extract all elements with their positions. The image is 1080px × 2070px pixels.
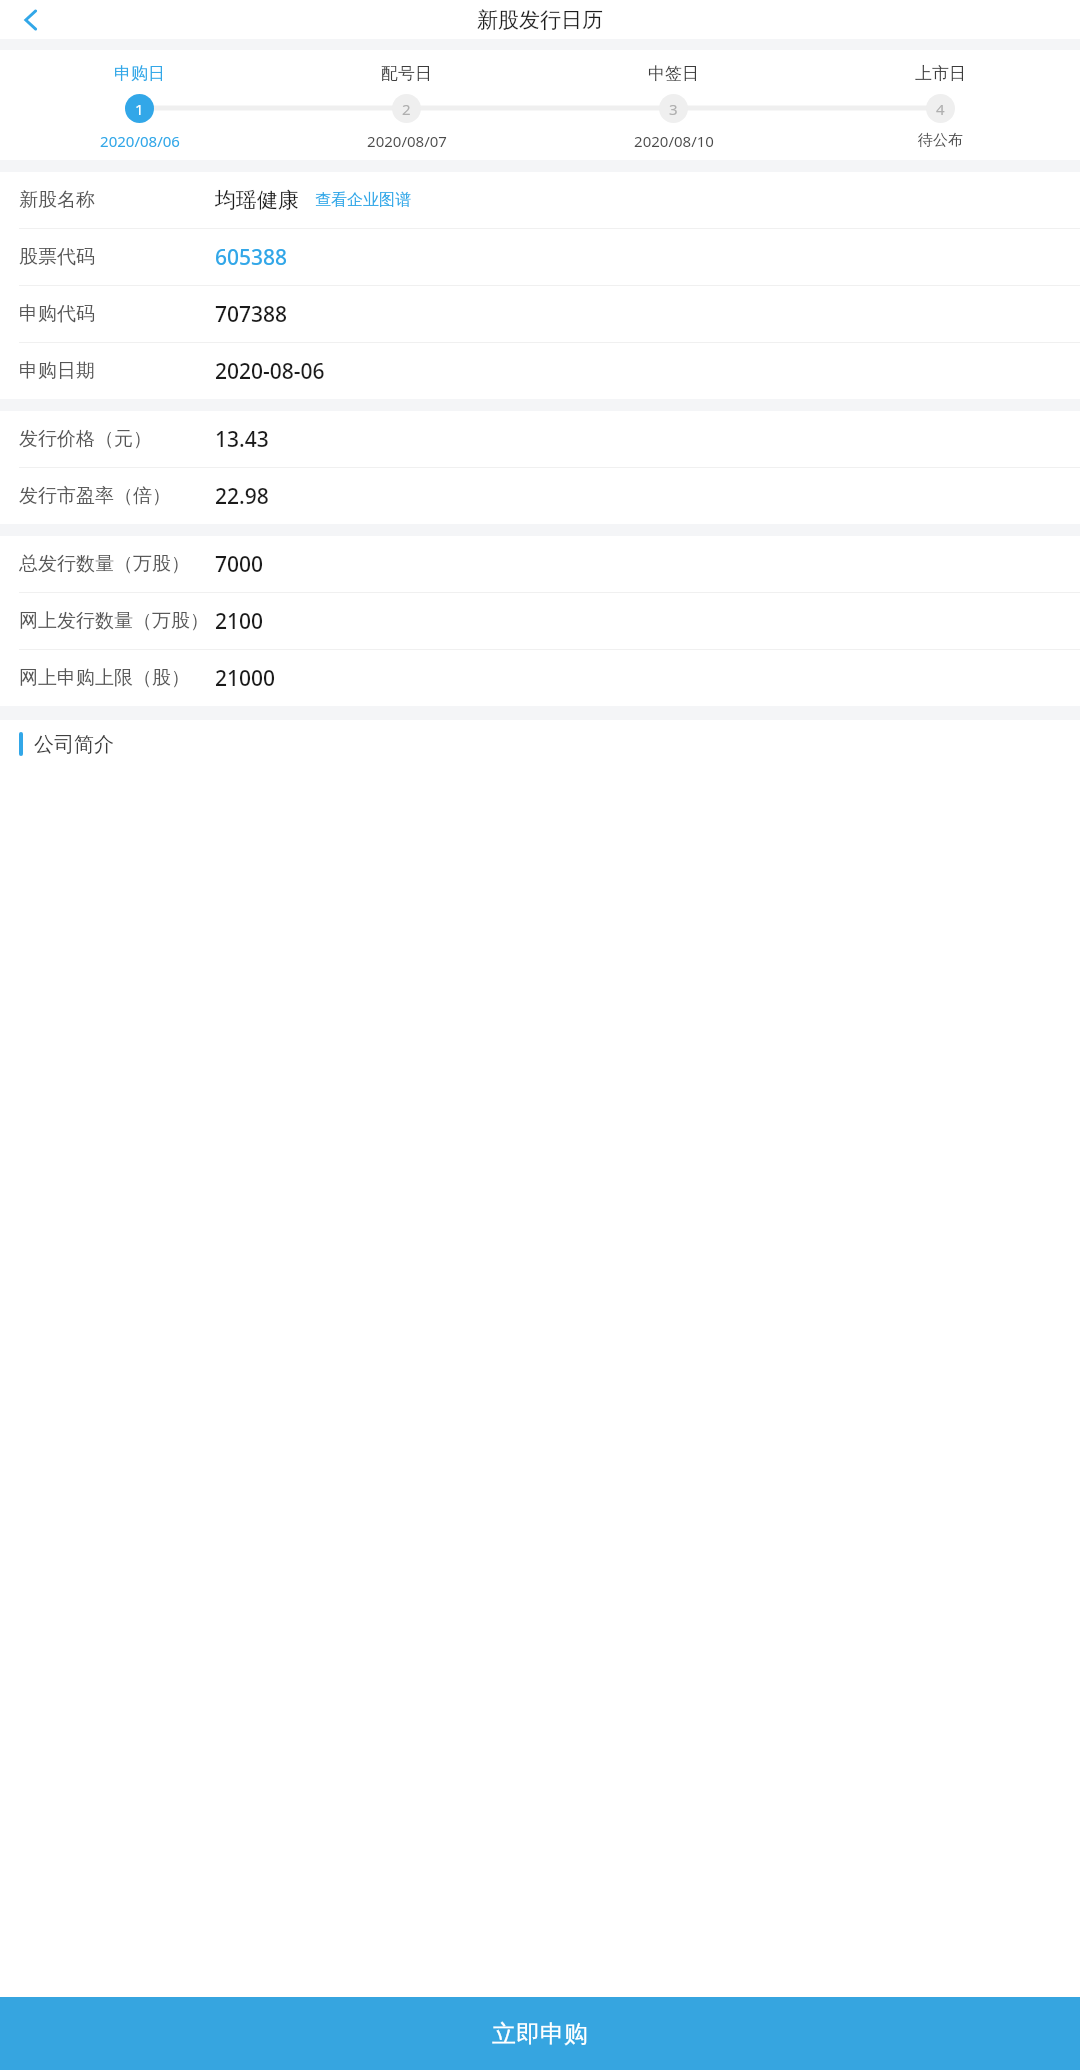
button[interactable]: 申购代码 <box>0 286 1080 343</box>
staticText: 申购代码 <box>19 302 95 326</box>
staticText: 4 <box>936 99 945 119</box>
button[interactable]: 立即申购 <box>0 1997 1080 2070</box>
button[interactable]: 新股名称 <box>0 172 1080 229</box>
staticText: 发行市盈率（倍） <box>19 484 171 508</box>
staticText: 2020/08/06 <box>100 131 180 151</box>
staticText: 申购日 <box>114 63 165 84</box>
staticText: 申购日期 <box>19 359 95 383</box>
staticText: 707388 <box>215 300 288 329</box>
button[interactable]: 公司简介 <box>0 720 1080 768</box>
staticText: 股票代码 <box>19 245 95 269</box>
button[interactable]: 网上发行数量（万股） <box>0 593 1080 650</box>
staticText: 2020/08/10 <box>634 131 714 151</box>
button[interactable]: 网上申购上限（股） <box>0 650 1080 706</box>
staticText: 2020/08/07 <box>367 131 447 151</box>
staticText: 发行价格（元） <box>19 427 152 451</box>
button[interactable]: 股票代码 <box>0 229 1080 286</box>
staticText: 2100 <box>215 607 264 636</box>
staticText: 2020-08-06 <box>215 357 325 386</box>
staticText: 均瑶健康 <box>215 187 299 213</box>
staticText: 新股名称 <box>19 188 95 212</box>
button[interactable]: 总发行数量（万股） <box>0 536 1080 593</box>
staticText: 网上申购上限（股） <box>19 666 190 690</box>
staticText: 上市日 <box>915 63 966 84</box>
staticText: 总发行数量（万股） <box>19 552 190 576</box>
staticText: 2 <box>402 99 411 119</box>
button[interactable]: 查看企业图谱 <box>315 190 411 210</box>
staticText: 605388 <box>215 243 288 272</box>
staticText: 待公布 <box>918 131 963 150</box>
button[interactable]: Back <box>8 0 54 39</box>
staticText: 配号日 <box>381 63 432 84</box>
staticText: 3 <box>669 99 678 119</box>
staticText: 公司简介 <box>34 732 114 757</box>
button[interactable]: 发行价格（元） <box>0 411 1080 468</box>
staticText: 1 <box>135 99 144 119</box>
staticText: 网上发行数量（万股） <box>19 609 209 633</box>
staticText: 中签日 <box>648 63 699 84</box>
staticText: 7000 <box>215 550 264 579</box>
staticText: 13.43 <box>215 425 269 454</box>
staticText: 21000 <box>215 664 276 693</box>
button[interactable]: 申购日期 <box>0 343 1080 399</box>
staticText: 立即申购 <box>492 2019 588 2049</box>
button[interactable]: 发行市盈率（倍） <box>0 468 1080 524</box>
staticText: 22.98 <box>215 482 269 511</box>
staticText: 新股发行日历 <box>477 7 603 33</box>
